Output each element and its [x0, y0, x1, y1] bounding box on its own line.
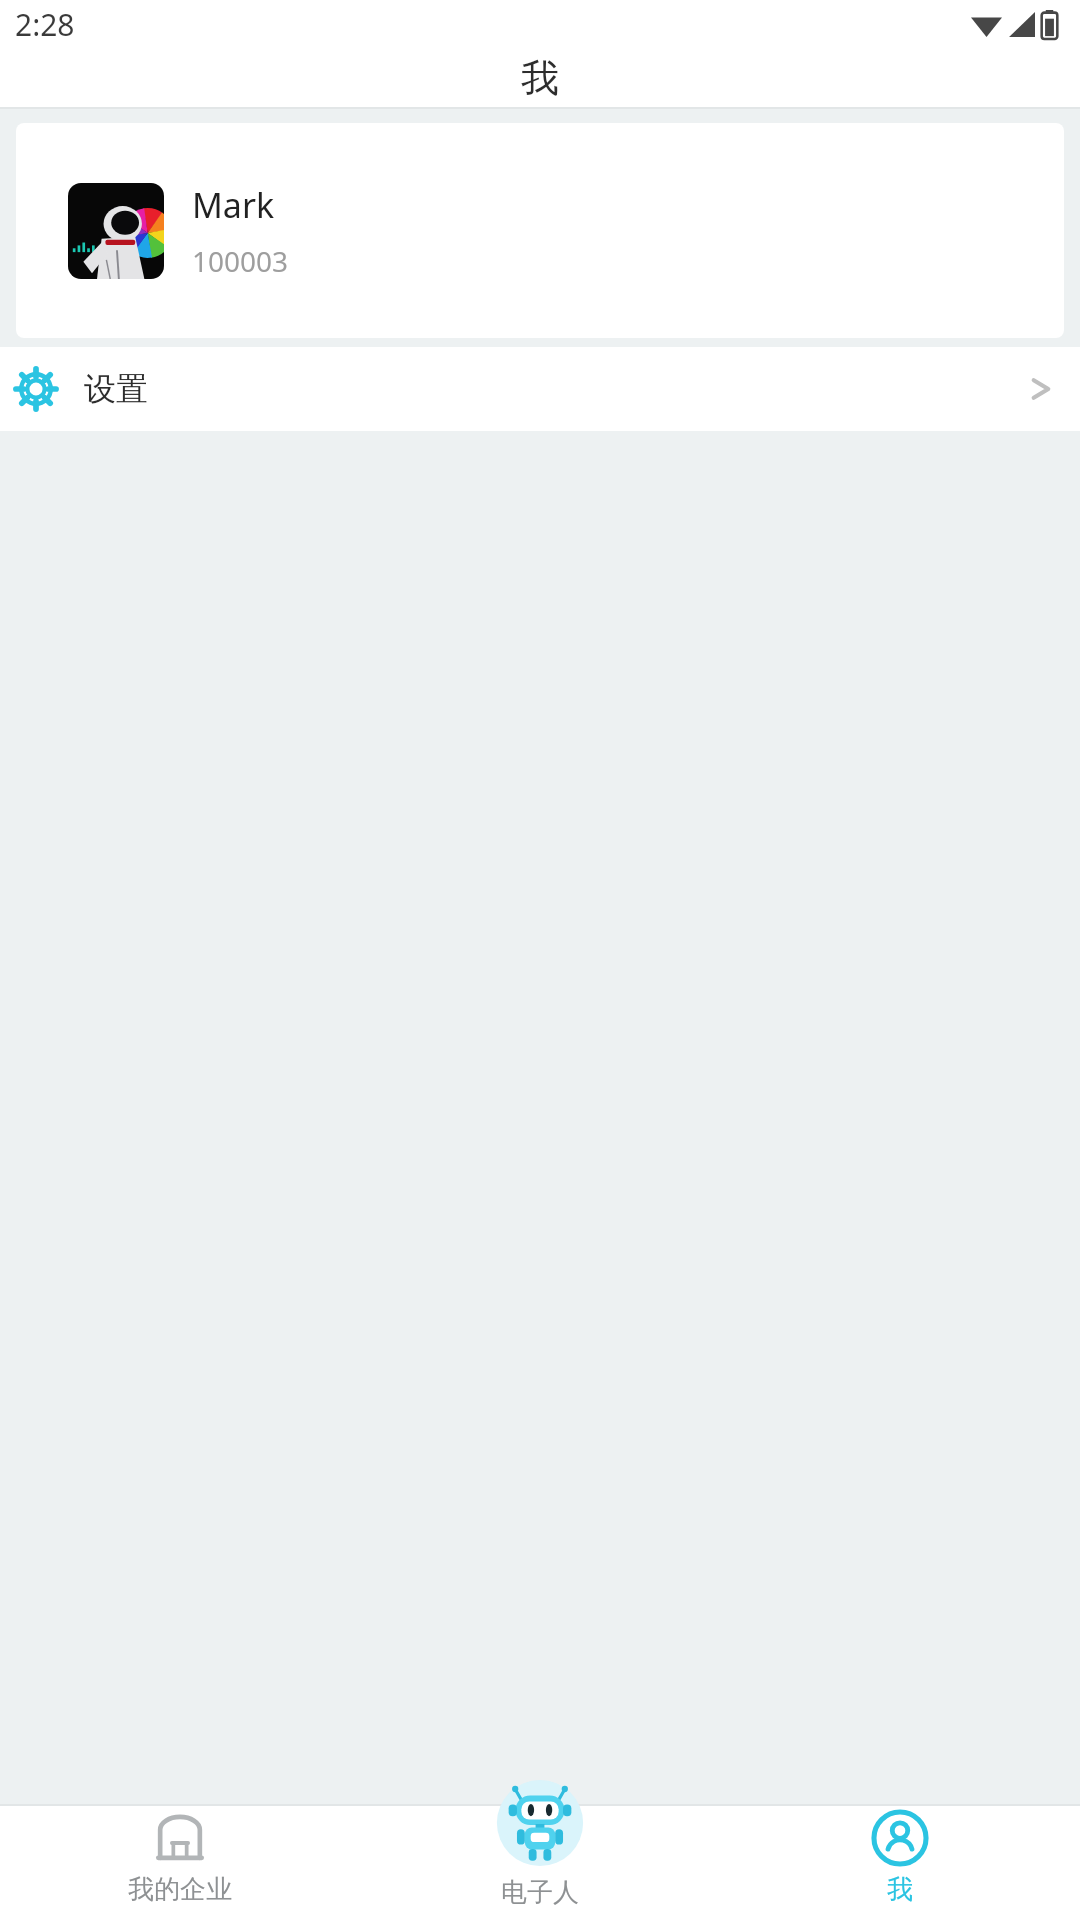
button[interactable]: 我	[720, 1774, 1080, 1920]
staticText: 电子人	[501, 1876, 579, 1909]
staticText: Mark	[192, 182, 275, 228]
button[interactable]: 设置	[0, 347, 1080, 431]
button[interactable]: 我的企业	[0, 1774, 360, 1920]
staticText: 100003	[192, 242, 289, 280]
staticText: 设置	[84, 369, 148, 409]
button[interactable]: 电子人	[360, 1774, 720, 1920]
staticText: 我	[887, 1873, 913, 1906]
staticText: 我	[521, 54, 559, 102]
staticText: 2:28	[15, 4, 75, 45]
staticText: 我的企业	[128, 1873, 232, 1906]
button[interactable]: Mark	[16, 123, 1064, 338]
